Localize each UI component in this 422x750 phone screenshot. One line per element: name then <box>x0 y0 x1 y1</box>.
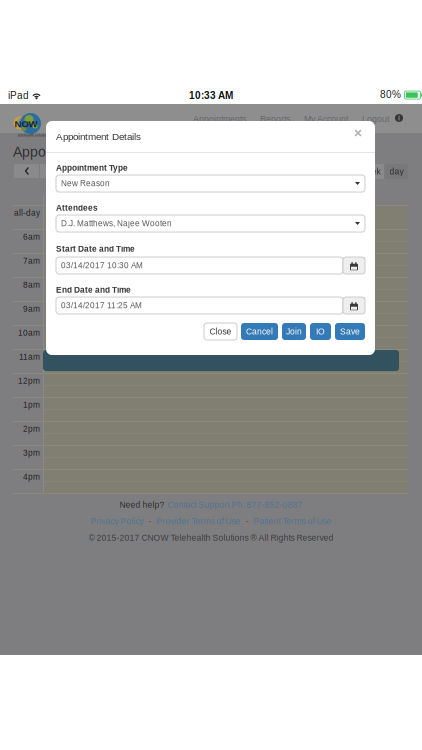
staticText: Appointments <box>13 144 100 160</box>
staticText: Reports <box>260 114 290 124</box>
staticText: 3pm <box>23 448 40 458</box>
staticText: Attendees <box>56 203 98 213</box>
staticText: 03/14/2017 11:25 AM <box>61 301 142 310</box>
button[interactable]: week <box>357 164 384 179</box>
button[interactable]: IO <box>310 323 331 340</box>
button[interactable]: Cancel <box>241 323 278 340</box>
staticText: 80% <box>380 89 401 100</box>
button[interactable]: Join <box>282 323 306 340</box>
staticText: Appointment Type <box>56 163 128 173</box>
button[interactable]: Close <box>204 323 237 340</box>
button[interactable]: Provider Terms of Use <box>156 516 240 526</box>
staticText: Need help? <box>119 500 164 509</box>
button[interactable]: New Reason <box>56 175 365 192</box>
staticText: Cancel <box>246 327 273 336</box>
staticText: NOW <box>14 118 37 129</box>
staticText: 10:33 AM <box>189 90 233 101</box>
staticText: 6am <box>23 232 40 242</box>
staticText: - <box>245 516 248 526</box>
staticText: week <box>360 167 380 176</box>
button[interactable]: Choose date <box>343 257 365 274</box>
staticText: 7am <box>23 256 40 266</box>
staticText: Contact Support Ph: 877-852-0887 <box>167 500 302 509</box>
button[interactable]: Close <box>351 126 365 140</box>
button[interactable]: Appointments <box>193 114 246 124</box>
button[interactable]: Choose date <box>343 297 365 314</box>
staticText: Logout <box>362 114 389 124</box>
staticText: © 2015-2017 CNOW Telehealth Solutions ® … <box>88 533 333 543</box>
staticText: Appointments <box>193 114 246 124</box>
staticText: New Reason <box>61 179 110 188</box>
staticText: - <box>148 516 151 526</box>
staticText: Provider Terms of Use <box>156 516 240 526</box>
button[interactable]: Account info <box>392 111 406 125</box>
button[interactable]: day <box>385 164 408 179</box>
staticText: IO <box>316 327 325 336</box>
staticText: 12pm <box>18 376 40 386</box>
button[interactable]: My Account <box>304 114 348 124</box>
button[interactable]: D.J. Matthews, Najee Wooten <box>56 215 365 232</box>
staticText: Start Date and Time <box>56 244 135 254</box>
staticText: 1pm <box>23 400 40 410</box>
staticText: Close <box>209 327 231 336</box>
button[interactable]: Contact Support Ph: 877-852-0887 <box>167 500 302 509</box>
staticText: 11am <box>19 352 40 362</box>
staticText: Privacy Policy <box>90 516 143 526</box>
button[interactable]: Privacy Policy <box>90 516 143 526</box>
staticText: all-day <box>14 208 40 218</box>
staticText: Save <box>340 327 360 336</box>
staticText: i <box>398 114 400 122</box>
staticText: 9am <box>23 304 40 314</box>
staticText: 8am <box>23 280 40 290</box>
staticText: 4pm <box>23 472 40 482</box>
staticText: Appointment Details <box>56 131 141 142</box>
button[interactable]: Reports <box>260 114 290 124</box>
staticText: telehealth solutions <box>18 133 50 137</box>
staticText: Join <box>286 327 302 336</box>
staticText: 03/14/2017 10:30 AM <box>61 261 143 270</box>
staticText: D.J. Matthews, Najee Wooten <box>61 219 172 228</box>
staticText: iPad <box>8 90 29 101</box>
staticText: 10am <box>18 328 40 338</box>
staticText: End Date and Time <box>56 285 131 295</box>
staticText: day <box>389 167 403 176</box>
button[interactable]: Logout <box>362 114 389 124</box>
staticText: Patient Terms of Use <box>253 516 331 526</box>
staticText: 2pm <box>23 424 40 434</box>
button[interactable]: Patient Terms of Use <box>253 516 331 526</box>
button[interactable]: Next day <box>40 164 65 178</box>
staticText: My Account <box>304 114 348 124</box>
button[interactable]: Save <box>335 323 365 340</box>
button[interactable]: Previous day <box>14 164 39 178</box>
